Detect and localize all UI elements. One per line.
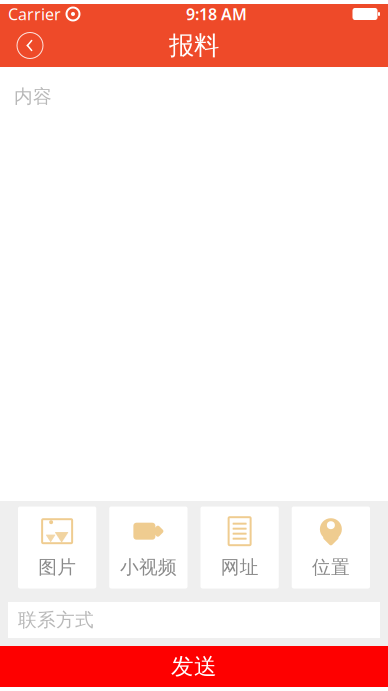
button[interactable]: 网址	[200, 506, 279, 588]
staticText: 内容	[14, 85, 52, 108]
button[interactable]: 发送	[0, 646, 388, 687]
staticText: 图片	[38, 556, 76, 579]
button[interactable]: 小视频	[109, 506, 187, 588]
staticText: 报料	[169, 30, 219, 61]
staticText: 9:18 AM	[186, 3, 247, 25]
button[interactable]: 位置	[292, 506, 370, 588]
button[interactable]: 图片	[18, 506, 96, 588]
button[interactable]: Back	[8, 24, 52, 67]
button[interactable]: 联系方式	[8, 602, 380, 638]
staticText: 发送	[171, 653, 217, 680]
staticText: 小视频	[120, 556, 177, 579]
staticText: 联系方式	[18, 608, 94, 631]
staticText: 位置	[312, 556, 350, 579]
staticText: 网址	[221, 556, 259, 579]
staticText: Carrier	[8, 3, 61, 25]
